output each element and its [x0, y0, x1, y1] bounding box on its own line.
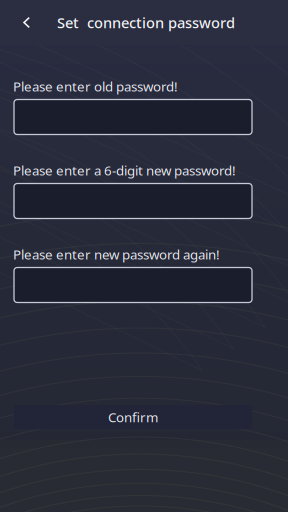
staticText: Please enter old password!: [13, 77, 178, 95]
button[interactable]: Back: [0, 0, 46, 45]
button[interactable]: [14, 183, 252, 218]
button[interactable]: Confirm: [14, 405, 252, 429]
staticText: Please enter new password again!: [13, 245, 220, 263]
staticText: Set connection password: [57, 13, 235, 32]
staticText: Confirm: [108, 408, 158, 426]
button[interactable]: [14, 267, 252, 302]
staticText: Please enter a 6-digit new password!: [13, 161, 236, 179]
button[interactable]: [14, 99, 252, 134]
